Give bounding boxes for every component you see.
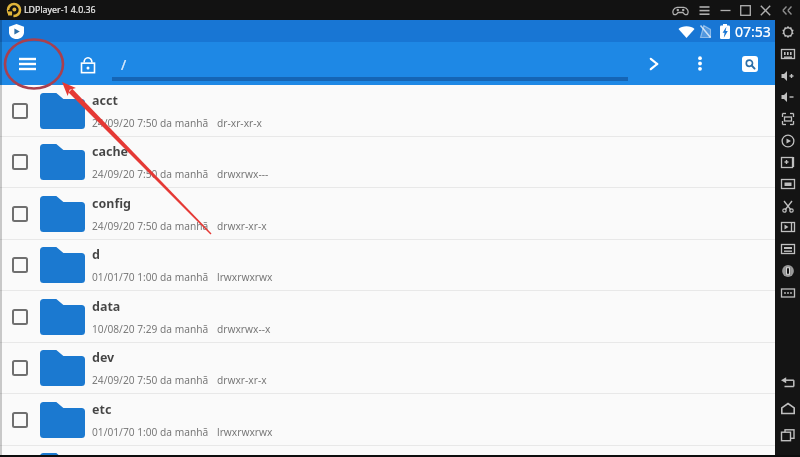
staticText: etc <box>92 401 112 418</box>
button[interactable]: Back <box>775 372 800 393</box>
button[interactable]: Search <box>734 48 765 79</box>
staticText: dr-xr-xr-x <box>217 116 262 130</box>
button[interactable]: Menu <box>694 0 714 20</box>
button[interactable]: Rotate screen <box>775 130 800 151</box>
staticText: cache <box>92 143 128 160</box>
button[interactable]: Settings <box>775 21 800 42</box>
staticText: 01/01/70 1:00 da manhã <box>92 425 209 439</box>
button[interactable]: Shake <box>775 260 800 281</box>
button[interactable]: Home <box>775 398 800 419</box>
button[interactable]: Screenshot <box>775 151 800 172</box>
staticText: drwxr-xr-x <box>217 373 267 387</box>
button[interactable]: Shared folder <box>775 238 800 259</box>
button[interactable]: Keyboard <box>775 43 800 64</box>
staticText: LDPlayer-1 4.0.36 <box>24 4 96 16</box>
button[interactable]: Maximize <box>735 0 755 20</box>
staticText: drwxrwx--x <box>217 322 271 336</box>
button[interactable]: Collapse <box>777 0 797 20</box>
button[interactable]: Go <box>638 48 669 79</box>
staticText: / <box>121 55 127 74</box>
button[interactable]: etc <box>0 394 775 446</box>
button[interactable]: dev <box>0 342 775 394</box>
staticText: 24/09/20 7:50 da manhã <box>92 219 209 233</box>
button[interactable]: More <box>775 282 800 303</box>
button[interactable]: Install APK <box>775 173 800 194</box>
staticText: acct <box>92 92 118 109</box>
staticText: 01/01/70 1:00 da manhã <box>92 270 209 284</box>
button[interactable]: More options <box>684 48 715 79</box>
staticText: config <box>92 195 131 212</box>
staticText: data <box>92 298 121 315</box>
staticText: drwxrwx--- <box>217 167 269 181</box>
staticText: drwxr-xr-x <box>217 219 267 233</box>
button[interactable]: config <box>0 188 775 240</box>
staticText: lib <box>92 452 108 457</box>
button[interactable]: Close <box>755 0 775 20</box>
staticText: 24/09/20 7:50 da manhã <box>92 167 209 181</box>
staticText: d <box>92 246 100 263</box>
staticText: 24/09/20 7:50 da manhã <box>92 373 209 387</box>
button[interactable]: d <box>0 239 775 291</box>
button[interactable]: Full screen <box>775 108 800 129</box>
button[interactable]: Game controls <box>670 0 690 20</box>
button[interactable]: data <box>0 291 775 343</box>
button[interactable]: Minimize <box>715 0 735 20</box>
staticText: 07:53 <box>735 22 771 41</box>
staticText: dev <box>92 349 115 366</box>
button[interactable]: Volume down <box>775 86 800 107</box>
button[interactable]: lib <box>0 445 775 457</box>
button[interactable]: Recents <box>775 424 800 445</box>
staticText: lrwxrwxrwx <box>217 425 273 439</box>
staticText: 24/09/20 7:50 da manhã <box>92 116 209 130</box>
button[interactable]: acct <box>0 85 775 137</box>
button[interactable]: Cut <box>775 195 800 216</box>
button[interactable]: Toggle read only <box>74 50 102 78</box>
button[interactable]: Navigation menu <box>10 47 44 81</box>
button[interactable]: Volume up <box>775 65 800 86</box>
button[interactable]: cache <box>0 136 775 188</box>
button[interactable]: Record <box>775 216 800 237</box>
staticText: 10/08/20 7:29 da manhã <box>92 322 209 336</box>
staticText: lrwxrwxrwx <box>217 270 273 284</box>
